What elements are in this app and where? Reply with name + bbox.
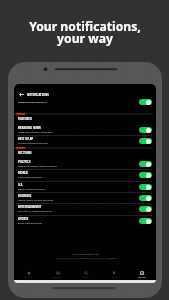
button[interactable]: Toggle on: [139, 99, 152, 105]
button[interactable]: Toggle on: [139, 127, 152, 133]
button[interactable]: Toggle on: [139, 184, 152, 190]
button[interactable]: BUSINESS: [14, 192, 156, 203]
button[interactable]: Back: [14, 89, 156, 100]
button[interactable]: BREAKING NEWS: [14, 124, 156, 135]
staticText: Stories of national importance: [18, 188, 45, 191]
staticText: Saved: [111, 276, 117, 279]
button[interactable]: WORLD: [14, 169, 156, 180]
staticText: Settings: [138, 276, 146, 279]
staticText: BUSINESS: [18, 194, 32, 198]
staticText: Can't miss storytelling, each week: [18, 142, 48, 145]
staticText: ENTERTAINMENT: [18, 205, 42, 209]
button[interactable]: Toggle on: [139, 161, 152, 167]
staticText: SPORTS: [18, 217, 29, 221]
staticText: News of global importance: [18, 176, 42, 179]
staticText: your way: [57, 30, 113, 47]
staticText: POLITICS: [18, 160, 31, 164]
button[interactable]: Top News: [14, 269, 43, 280]
staticText: You are running AP News version 5.9.0 PR…: [54, 256, 117, 259]
staticText: SECTIONS: [18, 151, 32, 155]
button[interactable]: Toggle on: [139, 195, 152, 201]
staticText: BREAKING NEWS: [18, 126, 41, 130]
button[interactable]: Settings: [128, 269, 156, 280]
button[interactable]: Toggle on: [139, 138, 152, 144]
button[interactable]: SPORTS: [14, 215, 156, 226]
button[interactable]: BEST OF AP: [14, 135, 156, 146]
button[interactable]: Sections: [43, 269, 72, 280]
staticText: Scores, trades and analysis: [18, 222, 42, 225]
staticText: Your notifications,: [29, 18, 141, 35]
button[interactable]: Saved: [100, 269, 128, 280]
button[interactable]: Enable push alerts from the AP: [14, 96, 156, 108]
staticText: Top News: [24, 276, 34, 279]
staticText: White House, Congress, elections & beyon…: [18, 165, 57, 168]
staticText: Markets, Finance, economy and beyond: [18, 199, 54, 202]
staticText: AP NEWS VERSION 5.9.0: [72, 252, 99, 255]
staticText: BEST OF AP: [18, 137, 34, 141]
staticText: NOTIFICATIONS: [27, 93, 49, 97]
staticText: FEATURED: [18, 117, 32, 121]
staticText: Film, music, TV, celebrity news & more: [18, 210, 52, 213]
staticText: Search: [83, 276, 90, 279]
button[interactable]: Back: [18, 91, 25, 98]
button[interactable]: Toggle on: [139, 172, 152, 178]
button[interactable]: Toggle on: [139, 206, 152, 212]
button[interactable]: Search: [72, 269, 100, 280]
staticText: WORLD: [18, 171, 29, 175]
button[interactable]: POLITICS: [14, 158, 156, 169]
button[interactable]: ENTERTAINMENT: [14, 203, 156, 214]
button[interactable]: Toggle on: [139, 218, 152, 224]
staticText: Enable push alerts from the AP: [18, 101, 48, 104]
button[interactable]: U.S.: [14, 181, 156, 192]
staticText: U.S.: [18, 183, 24, 187]
staticText: Urgent events and other developments: [18, 131, 53, 134]
staticText: Sections: [53, 276, 62, 279]
